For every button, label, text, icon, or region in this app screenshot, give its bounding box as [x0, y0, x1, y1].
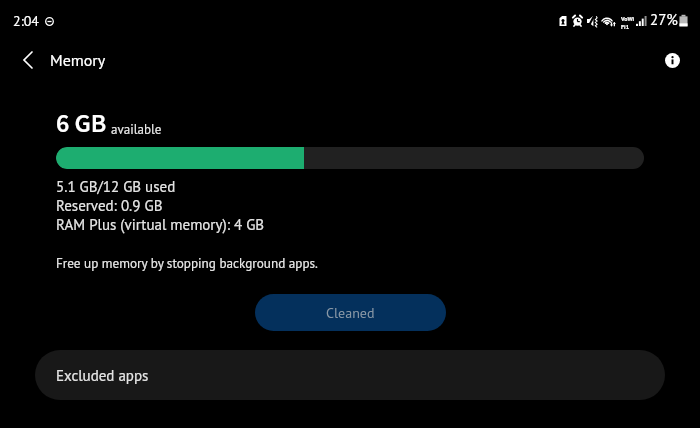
button[interactable]: Excluded apps — [35, 350, 665, 400]
staticText: Excluded apps — [56, 366, 149, 385]
staticText: Free up memory by stopping background ap… — [56, 255, 318, 272]
staticText: Fi1 — [621, 23, 630, 31]
button[interactable]: Information — [656, 44, 688, 76]
staticText: available — [111, 121, 162, 138]
staticText: RAM Plus (virtual memory): 4 GB — [56, 215, 265, 234]
staticText: Cleaned — [326, 304, 375, 322]
staticText: 6 GB — [56, 105, 107, 142]
staticText: 5.1 GB/12 GB used — [56, 177, 176, 196]
staticText: Memory — [50, 50, 106, 71]
staticText: VoWi — [621, 15, 635, 23]
button[interactable]: Navigate up — [12, 44, 44, 76]
staticText: 2:04 — [13, 12, 39, 30]
staticText: 27% — [650, 10, 678, 29]
button[interactable]: Cleaned — [255, 294, 446, 331]
staticText: Reserved: 0.9 GB — [56, 196, 163, 215]
